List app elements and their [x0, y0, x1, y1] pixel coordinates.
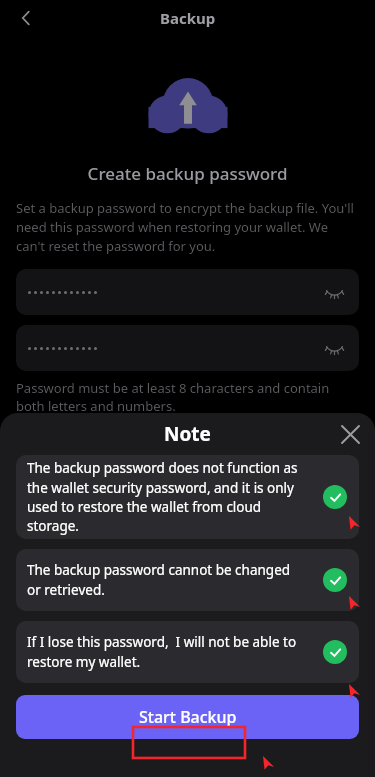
button[interactable]: The backup password cannot be changed or… — [16, 549, 359, 611]
button[interactable]: Back — [8, 0, 44, 36]
staticText: Note — [164, 421, 211, 447]
staticText: Create backup password — [0, 162, 375, 185]
other: Acknowledged — [323, 568, 347, 592]
button[interactable]: Show password — [319, 277, 349, 307]
button[interactable]: Show password — [16, 269, 359, 315]
button[interactable]: Start Backup — [16, 695, 359, 739]
staticText: The backup password does not function as… — [27, 459, 301, 535]
button[interactable]: Show password — [319, 333, 349, 363]
staticText: Password must be at least 8 characters a… — [16, 379, 359, 415]
staticText: If I lose this password, I will not be a… — [27, 633, 301, 671]
button[interactable]: Show password — [16, 325, 359, 371]
staticText: Start Backup — [139, 706, 237, 728]
button[interactable]: Close — [334, 418, 366, 450]
other: Acknowledged — [323, 485, 347, 509]
button[interactable]: The backup password does not function as… — [16, 455, 359, 539]
staticText: Set a backup password to encrypt the bac… — [16, 199, 359, 255]
staticText: The backup password cannot be changed or… — [27, 561, 301, 599]
other: Acknowledged — [323, 640, 347, 664]
staticText: Backup — [160, 8, 216, 28]
button[interactable]: If I lose this password, I will not be a… — [16, 621, 359, 683]
